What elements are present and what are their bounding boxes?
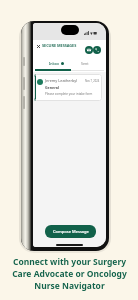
button[interactable]: Sent [76,57,94,70]
button[interactable]: Jeremy Leatherbyl [34,74,102,101]
staticText: Nov 7, 2024 [85,79,100,83]
button[interactable]: Close [36,44,41,49]
staticText: SECURE MESSAGES [42,43,77,48]
staticText: Compose Message [53,229,89,234]
staticText: Connect with your Surgery Care Advocate … [12,256,127,292]
staticText: Jeremy Leatherbyl [45,78,78,83]
staticText: Inbox [49,61,60,66]
button[interactable]: Call [93,46,101,54]
button[interactable]: Inbox [47,57,65,70]
staticText: General [45,85,59,90]
button[interactable]: New message [85,46,93,54]
button[interactable]: Compose Message [45,225,96,238]
staticText: Please complete your intake form [45,92,93,96]
staticText: Sent [81,61,89,66]
